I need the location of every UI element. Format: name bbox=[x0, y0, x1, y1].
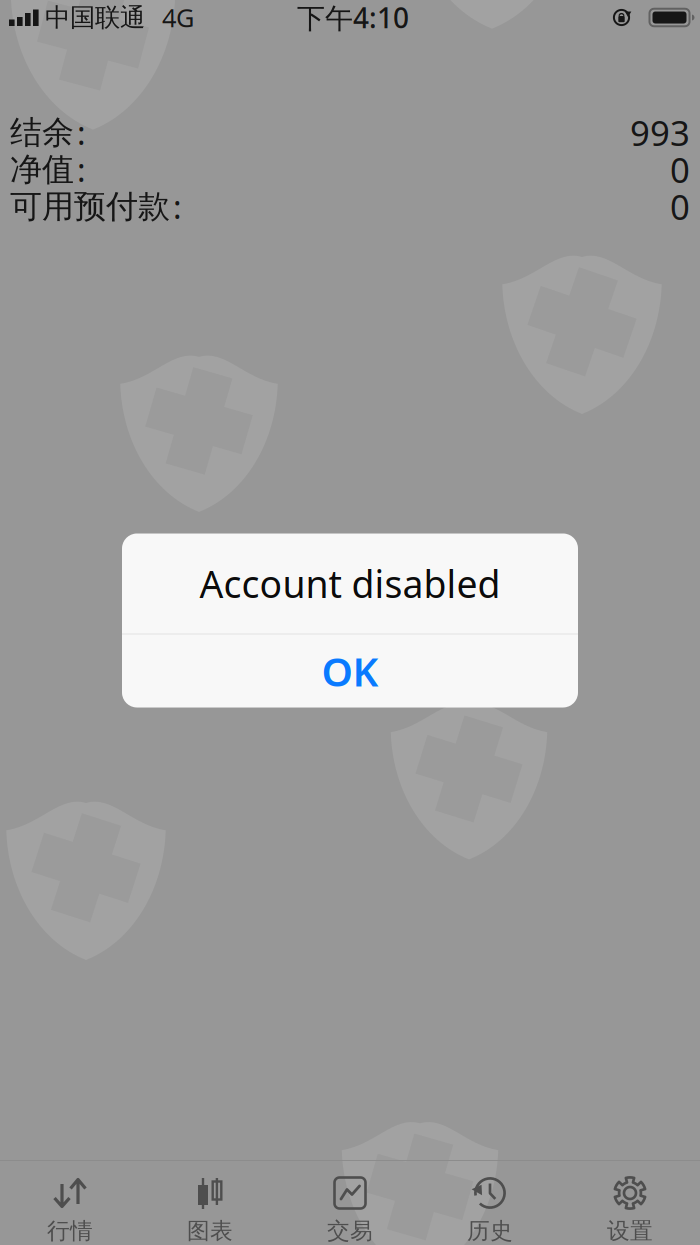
button[interactable]: 行情 bbox=[0, 1161, 140, 1245]
staticText: : bbox=[173, 185, 182, 228]
button[interactable]: 交易 bbox=[280, 1161, 420, 1245]
staticText: 可用预付款 bbox=[10, 187, 170, 226]
button[interactable]: 设置 bbox=[560, 1161, 700, 1245]
staticText: 结余 bbox=[10, 113, 74, 152]
staticText: 行情 bbox=[47, 1217, 93, 1245]
staticText: OK bbox=[321, 644, 378, 697]
staticText: 交易 bbox=[327, 1217, 373, 1245]
button[interactable]: 历史 bbox=[420, 1161, 560, 1245]
staticText: 净值 bbox=[10, 150, 74, 189]
staticText: 中国联通 bbox=[45, 2, 145, 33]
staticText: 0 bbox=[670, 183, 690, 229]
staticText: 历史 bbox=[467, 1217, 513, 1245]
staticText: : bbox=[77, 111, 86, 154]
staticText: 993 bbox=[630, 109, 690, 155]
staticText: 下午4:10 bbox=[297, 0, 409, 36]
button[interactable]: 图表 bbox=[140, 1161, 280, 1245]
staticText: : bbox=[77, 148, 86, 191]
staticText: Account disabled bbox=[199, 559, 500, 608]
staticText: 图表 bbox=[187, 1217, 233, 1245]
staticText: 4G bbox=[162, 1, 194, 34]
staticText: 设置 bbox=[607, 1217, 653, 1245]
staticText: 0 bbox=[670, 146, 690, 192]
button[interactable]: OK bbox=[122, 634, 578, 707]
